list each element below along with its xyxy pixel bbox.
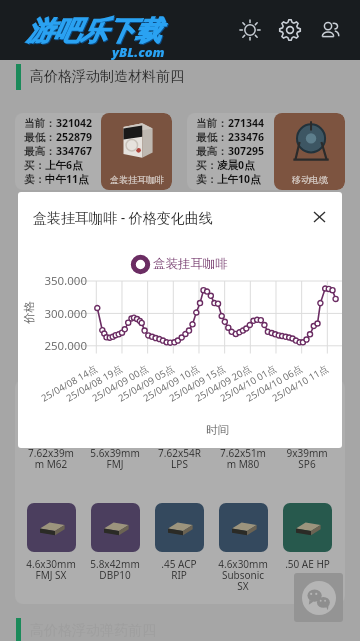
staticText: 最高： [24, 145, 56, 158]
staticText: 价格 [22, 301, 36, 324]
staticText: 252879 [56, 130, 93, 144]
staticText: 271344 [228, 116, 265, 130]
button[interactable]: Settings [270, 10, 310, 50]
button[interactable]: Brightness [230, 10, 270, 50]
staticText: 25/04/09 05点 [116, 362, 177, 405]
staticText: .50 AE HP [285, 557, 330, 571]
staticText: 7.62x39m m M62 [28, 446, 74, 471]
staticText: 25/04/10 11点 [270, 362, 331, 405]
staticText: 334767 [56, 144, 93, 158]
staticText: 250,000 [44, 338, 87, 350]
button[interactable]: WeChat [294, 573, 343, 622]
button[interactable]: .45 ACP RIP [149, 503, 209, 582]
staticText: 最低： [196, 131, 228, 144]
staticText: 25/04/09 15点 [167, 362, 228, 405]
staticText: 卖： [196, 173, 217, 186]
button[interactable]: Account [310, 10, 350, 50]
button[interactable]: .50 AE HP [277, 503, 337, 571]
staticText: 当前： [24, 117, 56, 130]
button[interactable]: 当前： [15, 113, 172, 190]
staticText: 卖： [24, 173, 45, 186]
staticText: 买： [24, 159, 45, 172]
staticText: 307295 [228, 144, 265, 158]
button[interactable]: Close [305, 203, 333, 231]
button[interactable]: 4.6x30mm FMJ SX [21, 503, 81, 582]
staticText: 移动电缆 [292, 174, 328, 185]
staticText: 上午10点 [217, 172, 261, 186]
staticText: 25/04/08 19点 [64, 362, 125, 405]
staticText: 游吧乐下载 [27, 15, 162, 49]
staticText: 最低： [24, 131, 56, 144]
staticText: 买： [196, 159, 217, 172]
staticText: 7.62x54R LPS [158, 446, 201, 471]
staticText: 时间 [206, 423, 229, 437]
staticText: 盒装挂耳咖啡 [110, 174, 164, 185]
staticText: 5.6x39mm FMJ [90, 446, 140, 471]
staticText: 上午6点 [45, 158, 83, 172]
staticText: .45 ACP RIP [161, 557, 197, 582]
staticText: 25/04/09 20点 [193, 362, 254, 405]
button[interactable]: 5.8x42mm DBP10 [85, 503, 145, 582]
staticText: 321042 [56, 116, 93, 130]
staticText: 25/04/08 14点 [39, 362, 100, 405]
staticText: 凌晨0点 [217, 158, 255, 172]
staticText: 300,000 [44, 306, 87, 318]
button[interactable]: 4.6x30mm Subsonic SX [213, 503, 273, 593]
staticText: 7.62x51m m M80 [220, 446, 266, 471]
staticText: 25/04/10 06点 [244, 362, 305, 405]
staticText: 25/04/09 10点 [141, 362, 202, 405]
staticText: 25/04/09 00点 [90, 362, 151, 405]
staticText: 当前： [196, 117, 228, 130]
staticText: 4.6x30mm FMJ SX [26, 557, 76, 582]
staticText: 350,000 [44, 273, 87, 285]
staticText: 25/04/10 01点 [218, 362, 279, 405]
staticText: 高价格浮动制造材料前四 [30, 68, 184, 86]
staticText: 5.8x42mm DBP10 [90, 557, 140, 582]
button[interactable]: 当前： [187, 113, 345, 190]
staticText: 中午11点 [45, 172, 89, 186]
staticText: 233476 [228, 130, 265, 144]
staticText: 4.6x30mm Subsonic SX [218, 557, 268, 593]
staticText: 游吧乐下载 [26, 14, 161, 48]
staticText: 9x39mm SP6 [286, 446, 328, 471]
staticText: 盒装挂耳咖啡 - 价格变化曲线 [33, 208, 213, 227]
staticText: 盒装挂耳咖啡 [153, 256, 228, 272]
staticText: yBL.com [112, 43, 165, 61]
staticText: 最高： [196, 145, 228, 158]
